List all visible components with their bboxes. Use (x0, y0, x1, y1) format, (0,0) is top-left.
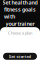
staticText: Set health and (2, 0, 37, 6)
staticText: Choose a plan (8, 30, 32, 35)
staticText: fitness goals with (4, 6, 36, 20)
staticText: Get started (8, 54, 31, 59)
staticText: your trainer (5, 20, 34, 27)
button[interactable]: Get started (3, 53, 37, 60)
